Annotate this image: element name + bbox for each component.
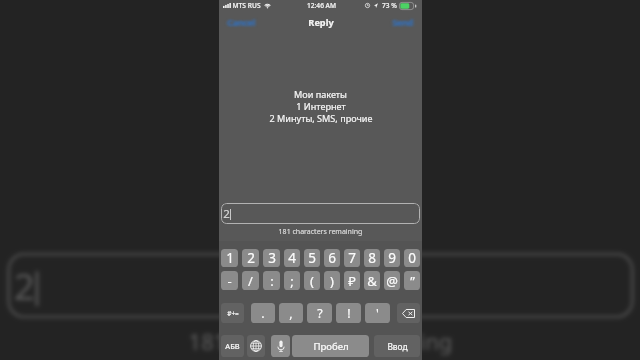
staticText: 181 characters remaining [1,328,640,360]
button[interactable]: ? [307,303,332,323]
button[interactable]: / [242,271,259,290]
staticText: . [261,305,265,322]
staticText: 181 characters remaining [219,227,422,237]
button[interactable]: ' [365,303,390,323]
button[interactable]: Ввод [374,335,420,357]
staticText: ( [310,272,314,290]
staticText: Пробел [313,340,349,353]
staticText: ? [317,305,323,322]
staticText: 1 Интернет [296,100,346,112]
staticText: 3 [268,249,276,267]
button[interactable]: Cancel [224,16,258,29]
button[interactable]: ” [404,271,420,290]
staticText: 12:46 AM [307,1,336,10]
staticText: : [270,272,274,290]
button[interactable]: 2 [242,249,259,267]
button[interactable]: & [364,271,380,290]
button[interactable]: ₽ [344,271,360,290]
staticText: Мои пакеты [294,88,347,100]
staticText: АБВ [225,341,240,351]
staticText: 0 [408,249,416,267]
button[interactable]: Backspace [397,303,420,323]
button[interactable]: ) [324,271,340,290]
staticText: @ [386,272,398,290]
staticText: ; [290,272,294,290]
button[interactable]: : [263,271,280,290]
staticText: 8 [368,249,376,267]
staticText: - [227,272,232,290]
button[interactable]: ; [284,271,300,290]
staticText: 5 [308,249,316,267]
staticText: 7 [348,249,356,267]
button[interactable]: 0 [404,249,420,267]
button[interactable]: 5 [304,249,320,267]
button[interactable]: - [221,271,238,290]
staticText: & [367,272,377,290]
staticText: 1 [226,249,234,267]
staticText: 73 % [382,1,397,10]
staticText: , [289,305,293,322]
button[interactable]: Change keyboard language [247,335,265,357]
staticText: ₽ [348,272,356,290]
button[interactable]: , [279,303,303,323]
staticText: MTS RUS [232,1,261,10]
staticText: Ввод [387,341,408,352]
button[interactable]: 2 [7,252,634,319]
button[interactable]: Dictation [271,335,290,357]
button[interactable]: АБВ [221,335,244,357]
staticText: ) [330,272,334,290]
button[interactable]: 1 [221,249,238,267]
button[interactable]: 9 [384,249,400,267]
staticText: 9 [388,249,396,267]
staticText: 2 [223,206,230,222]
button[interactable]: #+= [221,303,244,323]
staticText: Cancel [227,16,255,29]
staticText: ' [376,305,379,322]
button[interactable]: Send [389,16,416,29]
button[interactable]: ( [304,271,320,290]
staticText: / [248,272,253,290]
staticText: Reply [308,16,334,29]
button[interactable]: 4 [284,249,300,267]
button[interactable]: @ [384,271,400,290]
staticText: 6 [328,249,336,267]
staticText: 2 Минуты, SMS, прочие [158,0,486,4]
staticText: ” [410,272,415,290]
staticText: Send [392,16,413,29]
button[interactable]: 6 [324,249,340,267]
button[interactable]: ! [336,303,361,323]
button[interactable]: 7 [344,249,360,267]
button[interactable]: 8 [364,249,380,267]
staticText: ! [347,305,351,322]
staticText: 2 [13,262,35,312]
staticText: 2 [247,249,255,267]
staticText: #+= [227,309,239,318]
staticText: 4 [288,249,296,267]
button[interactable]: 3 [263,249,280,267]
staticText: 2 Минуты, SMS, прочие [269,112,373,124]
button[interactable]: . [251,303,275,323]
button[interactable]: Пробел [292,335,369,357]
button[interactable]: 2 [221,203,420,224]
